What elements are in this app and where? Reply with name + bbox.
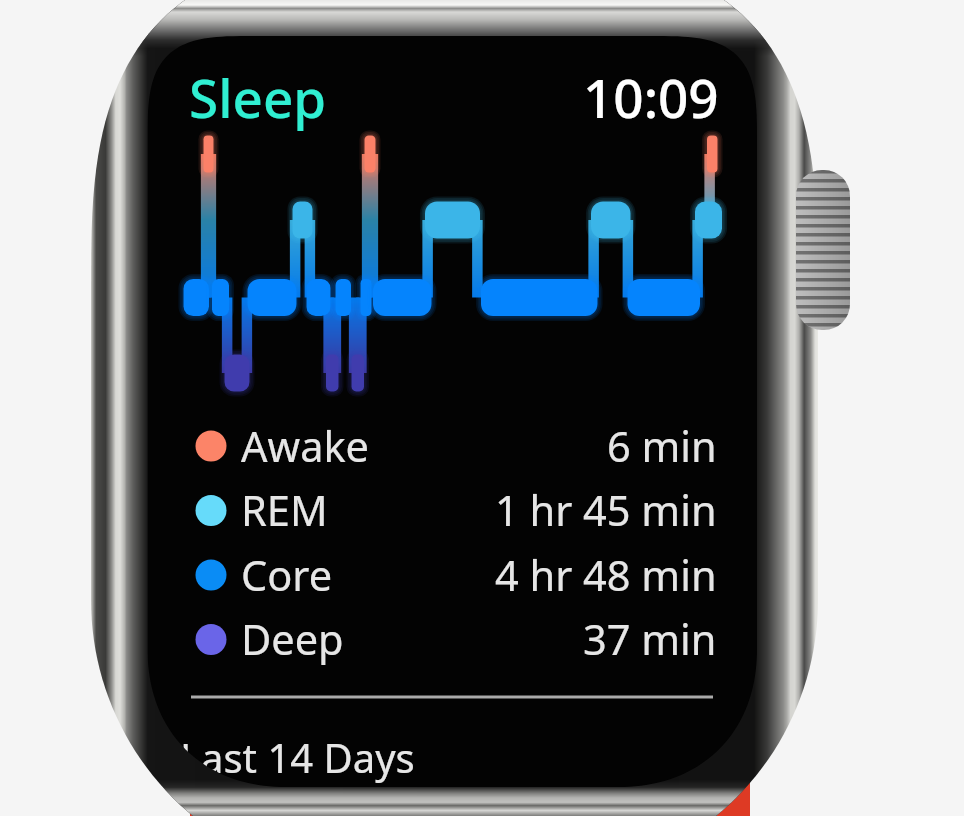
button[interactable]: Sleep stages	[0, 0, 964, 816]
